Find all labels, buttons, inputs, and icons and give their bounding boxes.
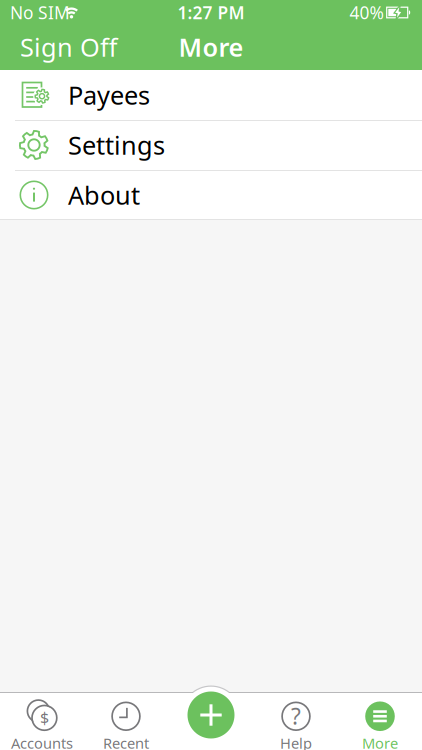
button[interactable]: Sign Off: [20, 25, 130, 69]
button[interactable]: Recent: [84, 700, 168, 750]
staticText: ?: [291, 701, 301, 731]
staticText: $: [40, 707, 49, 728]
staticText: Payees: [68, 78, 150, 112]
staticText: 40%: [349, 1, 383, 24]
button[interactable]: $: [0, 700, 84, 750]
button[interactable]: Payees: [0, 70, 422, 120]
staticText: 1:27 PM: [177, 1, 244, 24]
button[interactable]: Add: [187, 691, 234, 738]
button[interactable]: More: [338, 700, 422, 750]
staticText: Recent: [103, 733, 149, 750]
button[interactable]: ?: [254, 700, 338, 750]
button[interactable]: About: [0, 170, 422, 220]
staticText: No SIM: [10, 1, 70, 24]
staticText: Sign Off: [20, 30, 117, 64]
staticText: Settings: [68, 128, 165, 162]
button[interactable]: Settings: [0, 120, 422, 170]
staticText: Help: [280, 733, 312, 750]
staticText: More: [178, 30, 243, 64]
staticText: About: [68, 178, 140, 212]
staticText: More: [362, 733, 398, 750]
staticText: Accounts: [11, 733, 73, 750]
